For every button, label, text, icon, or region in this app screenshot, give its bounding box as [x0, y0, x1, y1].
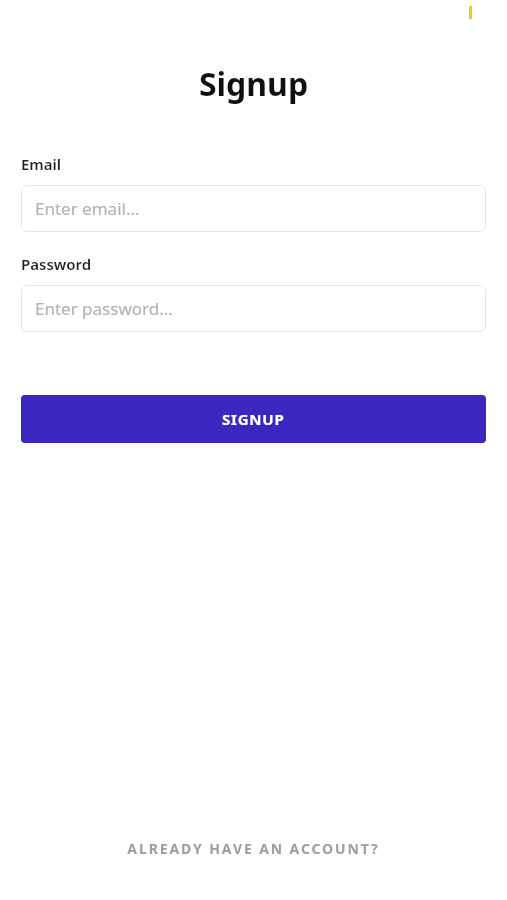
staticText: Signup	[0, 62, 507, 106]
button[interactable]: SIGNUP	[21, 395, 486, 443]
staticText: SIGNUP	[222, 409, 285, 429]
staticText: Enter email...	[35, 197, 140, 220]
button[interactable]: Enter password...	[21, 285, 486, 332]
staticText: Email	[21, 154, 62, 174]
staticText: Enter password...	[35, 297, 173, 320]
staticText: ALREADY HAVE AN ACCOUNT?	[127, 839, 380, 858]
staticText: Password	[21, 254, 92, 274]
button[interactable]: ALREADY HAVE AN ACCOUNT?	[0, 839, 507, 858]
button[interactable]: Enter email...	[21, 185, 486, 232]
